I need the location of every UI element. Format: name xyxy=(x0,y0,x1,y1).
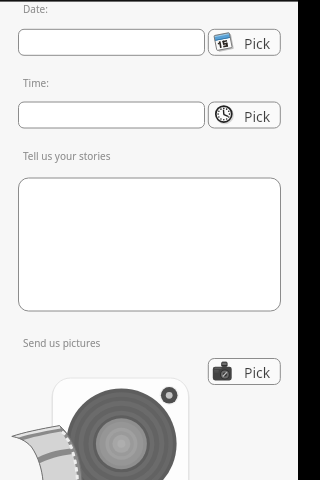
staticText: Send us pictures xyxy=(23,336,101,350)
staticText: Time: xyxy=(23,76,49,90)
button[interactable]: Pick picture xyxy=(208,359,280,385)
button[interactable]: Pick date xyxy=(208,29,280,55)
button[interactable]: Time input xyxy=(19,102,205,128)
staticText: Pick xyxy=(244,34,271,53)
staticText: Date: xyxy=(23,2,48,16)
staticText: Pick xyxy=(244,107,271,126)
button[interactable]: Story input xyxy=(19,178,281,311)
button[interactable]: Date input xyxy=(19,29,205,55)
staticText: Tell us your stories xyxy=(23,149,111,163)
button[interactable]: Pick time xyxy=(208,102,280,128)
staticText: Pick xyxy=(244,363,271,382)
button[interactable]: Selected picture xyxy=(53,378,189,480)
